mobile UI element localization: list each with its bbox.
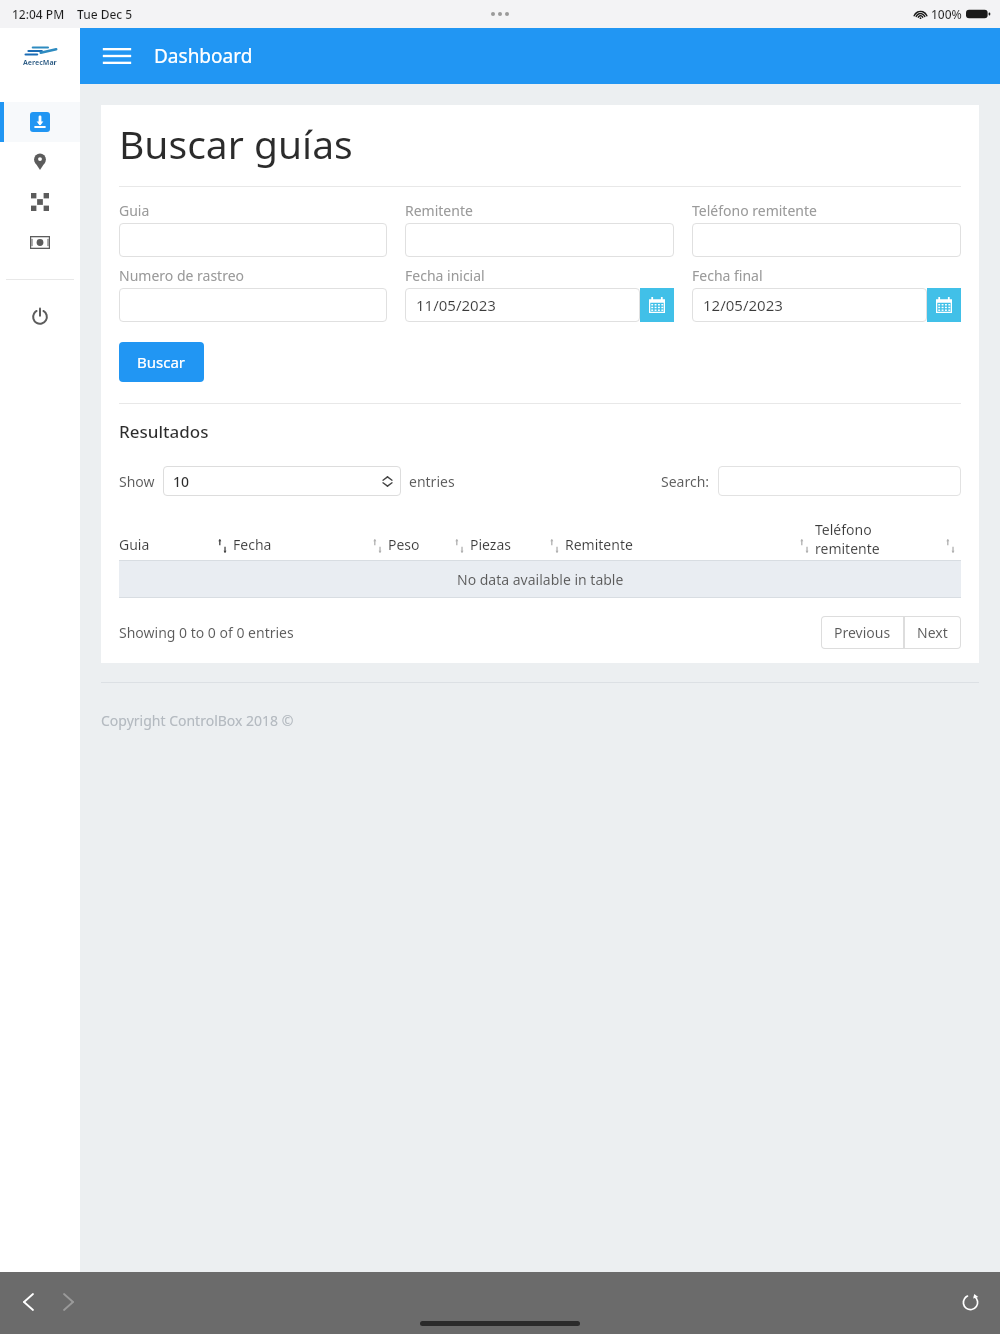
- staticText: Buscar: [137, 352, 186, 372]
- staticText: Next: [917, 623, 948, 642]
- staticText: 11/05/2023: [416, 295, 496, 315]
- staticText: Fecha final: [692, 266, 763, 285]
- button[interactable]: Next: [904, 616, 961, 649]
- button[interactable]: [692, 223, 961, 257]
- staticText: Guia: [119, 201, 150, 220]
- button[interactable]: Guias: [0, 102, 80, 142]
- staticText: Piezas: [470, 535, 550, 554]
- button[interactable]: Rastreo: [0, 142, 80, 182]
- button[interactable]: Menu: [80, 28, 154, 84]
- staticText: Resultados: [119, 420, 209, 443]
- staticText: Peso: [388, 535, 455, 554]
- staticText: 12:04 PM: [12, 6, 65, 22]
- staticText: Previous: [834, 623, 891, 642]
- staticText: Numero de rastreo: [119, 266, 245, 285]
- staticText: Buscar guías: [119, 117, 353, 170]
- button[interactable]: Buscar: [119, 342, 204, 382]
- button[interactable]: 10: [163, 466, 401, 496]
- staticText: 10: [173, 472, 190, 491]
- button[interactable]: Tarifas: [0, 182, 80, 222]
- button[interactable]: [119, 223, 387, 257]
- staticText: Dashboard: [154, 43, 253, 69]
- button[interactable]: Open calendar: [640, 288, 674, 322]
- button[interactable]: Reload: [952, 1284, 988, 1320]
- staticText: Guia: [119, 535, 218, 554]
- button[interactable]: Salir: [0, 296, 80, 336]
- staticText: Remitente: [565, 535, 800, 554]
- staticText: 12/05/2023: [703, 295, 783, 315]
- staticText: Teléfono remitente: [692, 201, 817, 220]
- staticText: Search:: [661, 472, 710, 491]
- button[interactable]: 11/05/2023: [405, 288, 640, 322]
- staticText: 100%: [931, 6, 962, 22]
- staticText: AerecMar: [23, 58, 57, 68]
- staticText: Fecha inicial: [405, 266, 485, 285]
- button[interactable]: Previous: [821, 616, 904, 649]
- button[interactable]: Open calendar: [927, 288, 961, 322]
- staticText: Fecha: [233, 535, 373, 554]
- staticText: Tue Dec 5: [77, 6, 133, 22]
- staticText: No data available in table: [457, 570, 624, 589]
- button[interactable]: Pagos: [0, 222, 80, 262]
- button[interactable]: [718, 466, 961, 496]
- staticText: Copyright ControlBox 2018 ©: [101, 711, 294, 730]
- staticText: Remitente: [405, 201, 473, 220]
- staticText: entries: [409, 472, 455, 491]
- staticText: Show: [119, 472, 155, 491]
- button[interactable]: Back: [10, 1284, 46, 1320]
- button[interactable]: Forward: [50, 1284, 86, 1320]
- staticText: Teléfono remitente: [815, 520, 946, 554]
- staticText: Showing 0 to 0 of 0 entries: [119, 623, 294, 642]
- button[interactable]: [119, 288, 387, 322]
- button[interactable]: 12/05/2023: [692, 288, 927, 322]
- button[interactable]: [405, 223, 674, 257]
